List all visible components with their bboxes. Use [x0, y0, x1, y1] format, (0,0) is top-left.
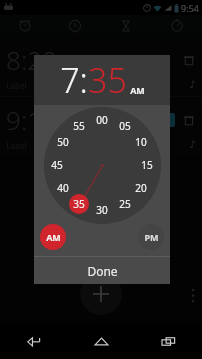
- staticText: 05: [119, 119, 131, 133]
- staticText: ♪: [189, 79, 196, 91]
- staticText: 40: [57, 181, 69, 195]
- button[interactable]: Back: [0, 323, 68, 359]
- button[interactable]: Stopwatch: [151, 15, 202, 37]
- button[interactable]: 35: [69, 194, 89, 214]
- button[interactable]: 10: [131, 132, 151, 152]
- button[interactable]: 30: [92, 200, 112, 220]
- staticText: 25: [119, 197, 131, 211]
- staticText: 30: [96, 203, 108, 217]
- staticText: 15: [141, 158, 153, 172]
- button[interactable]: Timer: [100, 15, 151, 37]
- button[interactable]: AM: [130, 84, 145, 96]
- staticText: 8:20: [6, 42, 57, 77]
- button[interactable]: 15: [137, 155, 157, 175]
- staticText: 50: [57, 135, 69, 149]
- button[interactable]: Delete alarm: [182, 53, 196, 67]
- staticText: Label: [6, 80, 27, 91]
- staticText: PM: [144, 231, 159, 243]
- button[interactable]: Done: [34, 257, 170, 284]
- staticText: SAT: [39, 140, 53, 151]
- button[interactable]: 45: [47, 155, 67, 175]
- button[interactable]: Add alarm: [80, 273, 122, 315]
- staticText: ♪: [189, 139, 196, 151]
- button[interactable]: Alarm: [0, 15, 50, 37]
- button[interactable]: PM: [138, 224, 164, 250]
- staticText: Label: [6, 140, 27, 151]
- button[interactable]: AM: [40, 224, 66, 250]
- button[interactable]: 05: [115, 116, 135, 136]
- staticText: Done: [87, 263, 118, 279]
- button[interactable]: Home: [68, 323, 135, 359]
- button[interactable]: 7:: [60, 57, 88, 103]
- button[interactable]: Delete alarm: [182, 113, 196, 127]
- staticText: 20: [135, 181, 147, 195]
- staticText: 35: [88, 57, 127, 103]
- staticText: 55: [73, 119, 85, 133]
- button[interactable]: 35: [88, 57, 127, 103]
- staticText: 10: [135, 135, 147, 149]
- button[interactable]: 55: [69, 116, 89, 136]
- button[interactable]: 50: [53, 132, 73, 152]
- staticText: 9:15: [6, 102, 57, 137]
- staticText: 7:: [60, 57, 88, 103]
- button[interactable]: Recents: [135, 323, 202, 359]
- button[interactable]: 25: [115, 194, 135, 214]
- staticText: AM: [130, 84, 145, 96]
- staticText: 45: [51, 158, 63, 172]
- staticText: AM: [46, 231, 61, 243]
- staticText: 35: [73, 197, 85, 211]
- staticText: 9:54: [181, 2, 199, 14]
- button[interactable]: 40: [53, 178, 73, 198]
- staticText: 00: [96, 113, 108, 127]
- button[interactable]: 20: [131, 178, 151, 198]
- button[interactable]: 00: [92, 110, 112, 130]
- button[interactable]: Clock: [50, 15, 100, 37]
